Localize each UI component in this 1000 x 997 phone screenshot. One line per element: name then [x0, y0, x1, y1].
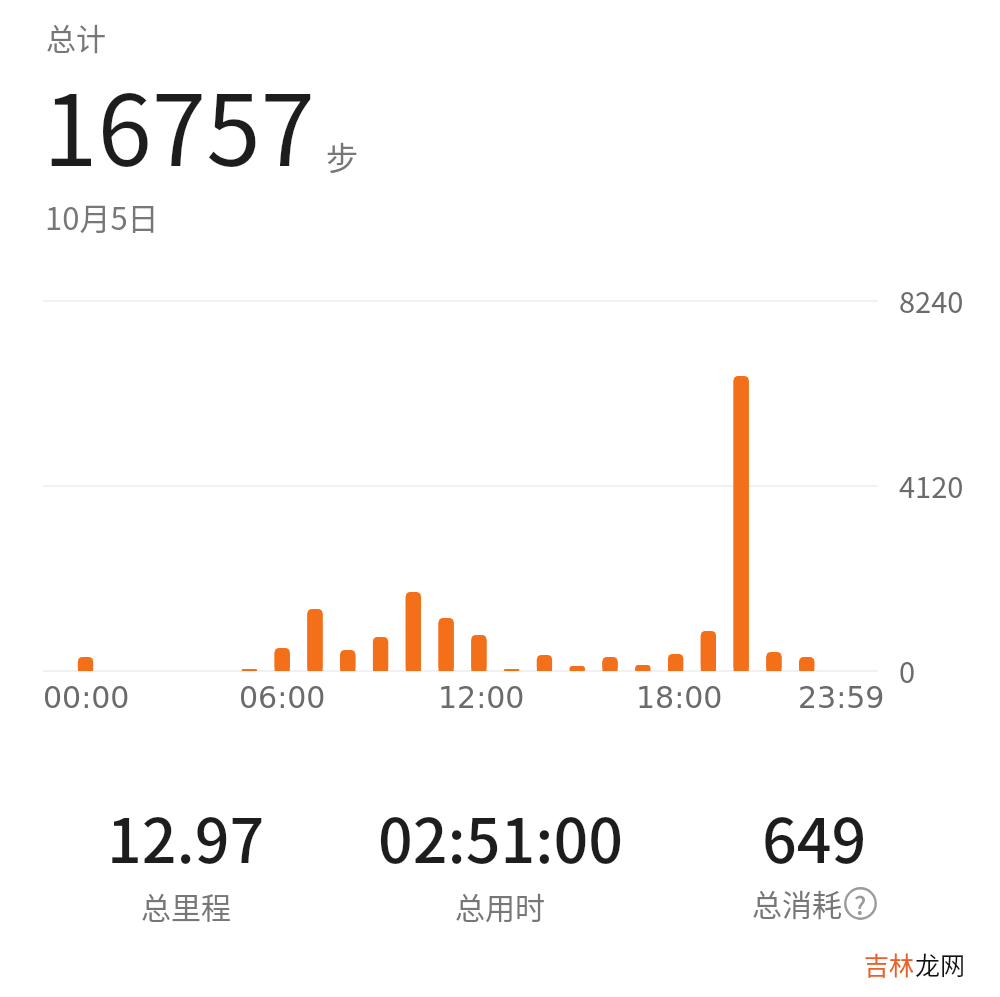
staticText: 龙网 [915, 946, 966, 982]
button[interactable]: Help [844, 887, 877, 920]
staticText: 18:00 [636, 680, 723, 715]
staticText: 12:00 [438, 680, 525, 715]
staticText: 12.97 [107, 792, 265, 880]
button[interactable]: 649 [664, 792, 964, 952]
button[interactable]: 02:51:00 [350, 792, 650, 952]
staticText: 吉林 [864, 946, 915, 982]
staticText: 总消耗 [752, 881, 842, 924]
button[interactable]: 12.97 [36, 792, 336, 952]
staticText: 总计 [46, 15, 106, 58]
staticText: 02:51:00 [378, 792, 623, 880]
staticText: 00:00 [43, 680, 130, 715]
staticText: ? [854, 886, 867, 919]
staticText: 649 [762, 792, 867, 880]
staticText: 4120 [899, 464, 964, 506]
staticText: 总用时 [455, 884, 545, 927]
staticText: 0 [899, 649, 916, 691]
staticText: 16757 [43, 52, 315, 194]
staticText: 总里程 [141, 884, 231, 927]
staticText: 06:00 [239, 680, 326, 715]
staticText: 8240 [899, 279, 964, 321]
staticText: 23:59 [798, 680, 885, 715]
staticText: 10月5日 [45, 194, 159, 239]
staticText: 步 [326, 133, 359, 179]
